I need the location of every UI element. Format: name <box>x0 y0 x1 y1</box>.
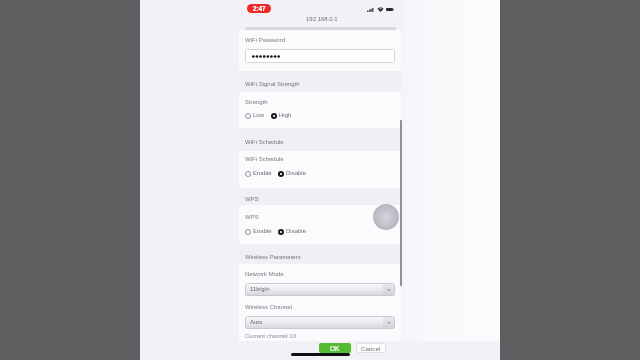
button[interactable]: Recording timer <box>247 4 271 13</box>
button[interactable]: WPS <box>239 188 401 205</box>
button[interactable]: Enable <box>245 170 272 177</box>
staticText: 2:47 <box>253 5 266 12</box>
button[interactable]: WiFi Schedule <box>239 128 401 151</box>
staticText: Disable <box>286 170 307 177</box>
staticText: WiFi Schedule <box>245 139 284 146</box>
button[interactable]: Low <box>245 112 265 119</box>
staticText: Current channel 10 <box>245 333 297 340</box>
staticText: 11b/g/n <box>250 286 270 293</box>
button[interactable]: WiFi Signal Strength <box>239 71 401 91</box>
staticText: Enable <box>253 228 272 235</box>
staticText: OK <box>330 345 340 352</box>
staticText: Auto <box>250 319 263 326</box>
staticText: Disable <box>286 228 307 235</box>
button[interactable]: Disable <box>278 170 307 177</box>
button[interactable]: Disable <box>278 228 307 235</box>
staticText: WiFi Signal Strength <box>245 81 300 88</box>
staticText: Enable <box>253 170 272 177</box>
staticText: Strength <box>245 99 268 106</box>
button[interactable] <box>245 49 395 63</box>
staticText: Low <box>253 112 265 119</box>
staticText: Network Mode <box>245 271 284 278</box>
button[interactable]: Auto <box>245 316 395 329</box>
button[interactable]: Enable <box>245 228 272 235</box>
button[interactable]: Cancel <box>356 343 386 353</box>
staticText: High <box>279 112 292 119</box>
staticText: WiFi Schedule <box>245 156 284 163</box>
button[interactable]: Wireless Parameters <box>239 244 401 264</box>
button[interactable]: 11b/g/n <box>245 283 395 296</box>
staticText: Cancel <box>361 345 381 352</box>
staticText: WPS <box>245 196 259 203</box>
staticText: Wireless Parameters <box>245 254 301 261</box>
button[interactable]: High <box>271 112 292 119</box>
staticText: WPS <box>245 214 259 221</box>
staticText: WiFi Password <box>245 37 286 44</box>
staticText: 192.168.0.1 <box>306 16 338 23</box>
button[interactable]: OK <box>319 343 351 353</box>
staticText: Wireless Channel <box>245 304 293 311</box>
